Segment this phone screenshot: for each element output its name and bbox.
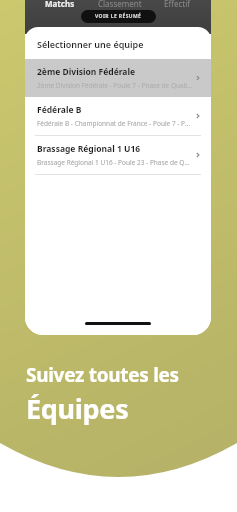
staticText: VOIR LE RÉSUMÉ (95, 13, 142, 20)
button[interactable]: Matchs (43, 0, 77, 10)
other: Ouvrir (193, 111, 203, 121)
button[interactable]: Brassage Régional 1 U16 (25, 136, 211, 174)
button[interactable]: Fédérale B (25, 97, 211, 135)
staticText: Matchs (45, 0, 75, 9)
button[interactable]: 2ème Division Fédérale (25, 59, 211, 97)
staticText: Classement (98, 0, 142, 9)
staticText: Brassage Régional 1 U16 (37, 143, 141, 155)
staticText: 2ème Division Fédérale - Poule 7 - Phase… (37, 81, 193, 90)
staticText: Sélectionner une équipe (37, 38, 144, 50)
staticText: Équipes (26, 390, 129, 427)
other: Ouvrir (193, 150, 203, 160)
button[interactable]: Effectif (162, 0, 193, 10)
staticText: Fédérale B - Championnat de France - Pou… (37, 119, 193, 128)
staticText: Effectif (164, 0, 191, 9)
other: Ouvrir (193, 73, 203, 83)
button[interactable]: Classement (96, 0, 144, 10)
staticText: 2ème Division Fédérale (37, 66, 136, 78)
staticText: Suivez toutes les (26, 362, 179, 388)
staticText: Fédérale B (37, 104, 82, 116)
button[interactable]: VOIR LE RÉSUMÉ (81, 10, 156, 23)
staticText: Brassage Régional 1 U16 - Poule 23 - Pha… (37, 158, 193, 167)
